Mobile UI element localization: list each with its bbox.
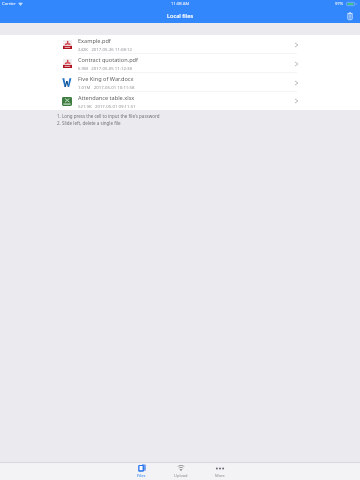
button[interactable]: Attendance table.xlsx xyxy=(0,92,360,110)
button[interactable]: Delete xyxy=(344,10,355,21)
button[interactable]: Example.pdf xyxy=(0,35,360,54)
button[interactable]: Upload xyxy=(161,463,200,480)
staticText: Attendance table.xlsx xyxy=(78,94,135,102)
staticText: 1. Long press the cell to input the file… xyxy=(57,113,160,119)
staticText: 242K 2017-05-26 11:08:12 xyxy=(78,46,132,52)
staticText: Five King of War.docx xyxy=(78,75,134,83)
staticText: Files xyxy=(137,473,146,478)
button[interactable]: Files xyxy=(122,463,161,480)
staticText: 97% xyxy=(335,1,344,7)
staticText: Contract quotation.pdf xyxy=(78,56,138,64)
staticText: Example.pdf xyxy=(78,37,111,45)
staticText: More xyxy=(215,473,225,478)
button[interactable]: Five King of War.docx xyxy=(0,73,360,92)
staticText: Local files xyxy=(167,12,194,20)
staticText: 6.9M 2017-05-05 11:12:38 xyxy=(78,65,132,71)
button[interactable]: Contract quotation.pdf xyxy=(0,54,360,73)
staticText: 1.01M 2017-05-01 10:11:58 xyxy=(78,84,135,90)
staticText: 2. Slide left, delete a single file xyxy=(57,120,121,126)
button[interactable]: More xyxy=(200,463,239,480)
staticText: 11:08 AM xyxy=(171,1,190,7)
staticText: Carrier xyxy=(2,1,16,7)
staticText: 521.9K 2017-05-01 09:11:51 xyxy=(78,103,136,109)
staticText: Upload xyxy=(174,473,188,478)
